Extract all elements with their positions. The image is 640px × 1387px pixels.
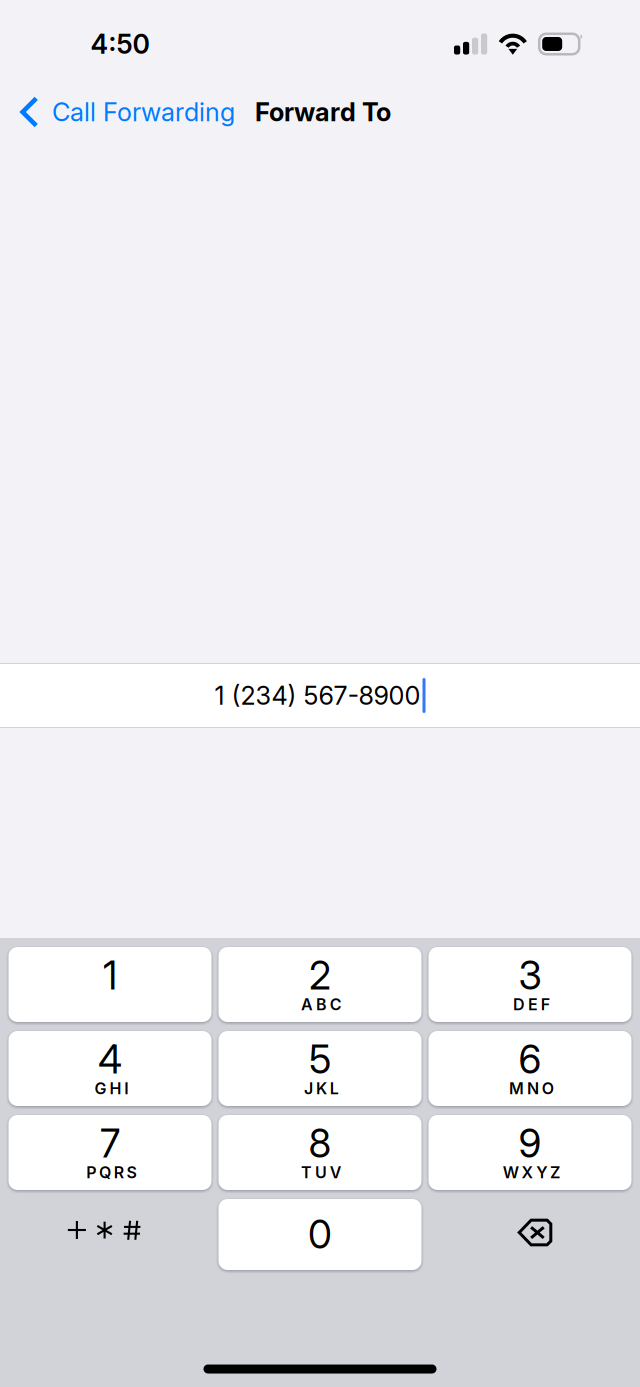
button[interactable]: Plus, star and pound symbols bbox=[8, 1199, 211, 1270]
button[interactable]: 1 bbox=[8, 947, 211, 1022]
staticText: 3 bbox=[518, 952, 541, 999]
button[interactable]: 2 bbox=[218, 947, 421, 1022]
staticText: JKL bbox=[304, 1079, 339, 1098]
staticText: PQRS bbox=[86, 1163, 137, 1182]
button[interactable]: 4 bbox=[8, 1031, 211, 1106]
staticText: TUV bbox=[301, 1163, 342, 1182]
button[interactable]: Call Forwarding bbox=[0, 88, 247, 136]
button[interactable]: 6 bbox=[428, 1031, 631, 1106]
staticText: MNO bbox=[509, 1079, 554, 1098]
staticText: DEF bbox=[513, 995, 550, 1014]
button[interactable]: 5 bbox=[218, 1031, 421, 1106]
button[interactable]: Delete bbox=[428, 1199, 631, 1270]
staticText: 4:50 bbox=[90, 28, 149, 60]
button[interactable]: 8 bbox=[218, 1115, 421, 1190]
staticText: ABC bbox=[301, 995, 342, 1014]
staticText: 1 bbox=[103, 952, 117, 999]
staticText: 6 bbox=[518, 1036, 541, 1083]
button[interactable]: 7 bbox=[8, 1115, 211, 1190]
staticText: 4 bbox=[98, 1036, 122, 1083]
button[interactable]: 0 bbox=[218, 1199, 421, 1270]
staticText: GHI bbox=[95, 1079, 128, 1098]
button[interactable]: 3 bbox=[428, 947, 631, 1022]
staticText: Forward To bbox=[255, 97, 391, 127]
staticText: 2 bbox=[309, 952, 331, 999]
staticText: 1 (234) 567-8900 bbox=[214, 680, 420, 711]
staticText: 8 bbox=[308, 1120, 331, 1167]
staticText: 0 bbox=[308, 1211, 332, 1258]
staticText: 7 bbox=[100, 1120, 120, 1167]
staticText: WXYZ bbox=[503, 1163, 560, 1182]
staticText: 9 bbox=[518, 1120, 541, 1167]
button[interactable]: 9 bbox=[428, 1115, 631, 1190]
staticText: 5 bbox=[309, 1036, 331, 1083]
staticText: Call Forwarding bbox=[52, 97, 235, 127]
